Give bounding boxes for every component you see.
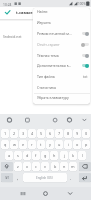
button[interactable]: 8 [64, 129, 72, 138]
button[interactable]: t-самые [16, 9, 33, 16]
staticText: e [22, 142, 25, 147]
staticText: Отчёт-скрипт [37, 42, 60, 47]
button[interactable]: e [19, 140, 27, 149]
button[interactable] [79, 162, 91, 171]
button[interactable]: 6 [46, 129, 54, 138]
button[interactable]: Дополнительная к… [34, 61, 90, 71]
staticText: d [26, 153, 29, 158]
staticText: 8 [67, 131, 70, 136]
staticText: Sndroid.net [3, 34, 22, 39]
staticText: l [82, 153, 83, 158]
staticText: x [26, 164, 29, 169]
staticText: v [44, 164, 46, 169]
button[interactable]: u [55, 140, 63, 149]
button[interactable]: d [23, 151, 31, 160]
button[interactable]: i [64, 140, 72, 149]
staticText: 4 [31, 131, 34, 136]
staticText: 6 [49, 131, 52, 136]
button[interactable]: 1 [1, 129, 9, 138]
button[interactable] [23, 173, 67, 182]
button[interactable]: g [41, 151, 49, 160]
staticText: f [35, 153, 37, 158]
button[interactable]: f [32, 151, 40, 160]
button[interactable]: Тип файла [34, 72, 90, 82]
button[interactable]: 3 [19, 129, 27, 138]
button[interactable]: p [82, 140, 90, 149]
button[interactable]: v [41, 162, 49, 171]
button[interactable]: h [50, 151, 58, 160]
staticText: t-самые [16, 10, 33, 15]
staticText: 0 [85, 131, 88, 136]
staticText: 9 [76, 131, 79, 136]
button[interactable]: 5 [37, 129, 45, 138]
button[interactable]: y [46, 140, 54, 149]
button[interactable]: Тёмная тема [34, 51, 90, 61]
button[interactable] [64, 189, 76, 198]
button[interactable]: l [78, 151, 86, 160]
button[interactable] [81, 63, 89, 68]
button[interactable]: x [23, 162, 31, 171]
button[interactable]: 9 [73, 129, 81, 138]
staticText: t [40, 142, 42, 147]
button[interactable] [81, 53, 89, 58]
button[interactable] [81, 42, 89, 47]
staticText: 7 [58, 131, 61, 136]
button[interactable]: Отчёт-скрипт [34, 40, 90, 50]
button[interactable]: q [1, 140, 9, 149]
staticText: 1 [4, 131, 7, 136]
staticText: h [53, 153, 56, 158]
button[interactable]: b [51, 162, 59, 171]
button[interactable]: Режим печатной м… [34, 29, 90, 39]
staticText: , [17, 175, 19, 181]
staticText: Найти [37, 9, 48, 14]
button[interactable] [1, 162, 13, 171]
button[interactable]: r [28, 140, 36, 149]
staticText: r [31, 142, 33, 147]
staticText: 3 [22, 131, 25, 136]
staticText: English (US) [36, 176, 53, 180]
staticText: Тёмная тема [37, 53, 59, 58]
button[interactable]: 2 [10, 129, 18, 138]
staticText: b [54, 164, 57, 169]
staticText: z [17, 164, 19, 169]
staticText: Тип файла [37, 74, 55, 79]
button[interactable] [17, 189, 29, 198]
button[interactable] [40, 189, 52, 198]
staticText: Режим печатной м… [37, 31, 72, 36]
button[interactable]: 7 [55, 129, 63, 138]
button[interactable]: Убрать клавиатуру [34, 93, 90, 103]
staticText: s [17, 153, 19, 158]
button[interactable] [79, 173, 91, 182]
staticText: Убрать клавиатуру [37, 95, 69, 100]
button[interactable]: c [32, 162, 40, 171]
button[interactable]: m [69, 162, 77, 171]
button[interactable]: z [14, 162, 22, 171]
button[interactable]: Статистика [34, 83, 90, 93]
staticText: q [4, 142, 7, 147]
staticText: k [72, 153, 75, 158]
button[interactable]: j [60, 151, 68, 160]
button[interactable]: Найти [34, 7, 90, 17]
staticText: y [49, 142, 51, 147]
button[interactable]: !#1 [1, 173, 13, 182]
staticText: . [70, 175, 72, 181]
button[interactable]: 4 [28, 129, 36, 138]
staticText: j [64, 153, 65, 158]
staticText: u [58, 142, 61, 147]
staticText: o [76, 142, 79, 147]
staticText: 100% [78, 2, 86, 6]
button[interactable]: Изучить [34, 18, 90, 28]
button[interactable]: k [69, 151, 77, 160]
staticText: Статистика [37, 85, 56, 90]
button[interactable]: a [5, 151, 13, 160]
button[interactable]: s [14, 151, 22, 160]
button[interactable]: o [73, 140, 81, 149]
staticText: m [71, 164, 75, 169]
staticText: !#1 [5, 176, 10, 180]
button[interactable]: n [60, 162, 68, 171]
button[interactable]: 0 [82, 129, 90, 138]
button[interactable] [81, 31, 89, 36]
button[interactable]: w [10, 140, 18, 149]
staticText: a [8, 153, 11, 158]
button[interactable]: t [37, 140, 45, 149]
